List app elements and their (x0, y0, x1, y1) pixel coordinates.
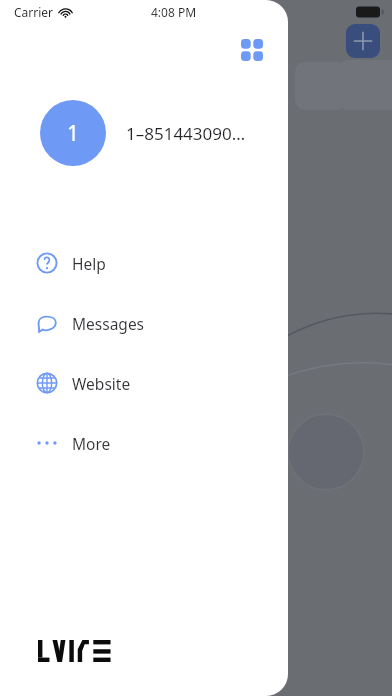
staticText: 1–851443090… (126, 122, 246, 145)
staticText: 1 (67, 119, 80, 148)
staticText: 4:08 PM (151, 4, 197, 20)
button[interactable]: 1 (0, 94, 288, 172)
button[interactable]: Messages (0, 308, 288, 338)
staticText: Carrier (14, 4, 54, 20)
staticText: Messages (72, 313, 145, 334)
button[interactable]: More (0, 428, 288, 458)
button[interactable]: Website (0, 368, 288, 398)
button[interactable]: Add (346, 24, 380, 58)
staticText: More (72, 433, 111, 454)
button[interactable]: Help (0, 248, 288, 278)
staticText: Website (72, 373, 131, 394)
button[interactable]: Apps (230, 28, 274, 72)
staticText: Help (72, 253, 106, 274)
